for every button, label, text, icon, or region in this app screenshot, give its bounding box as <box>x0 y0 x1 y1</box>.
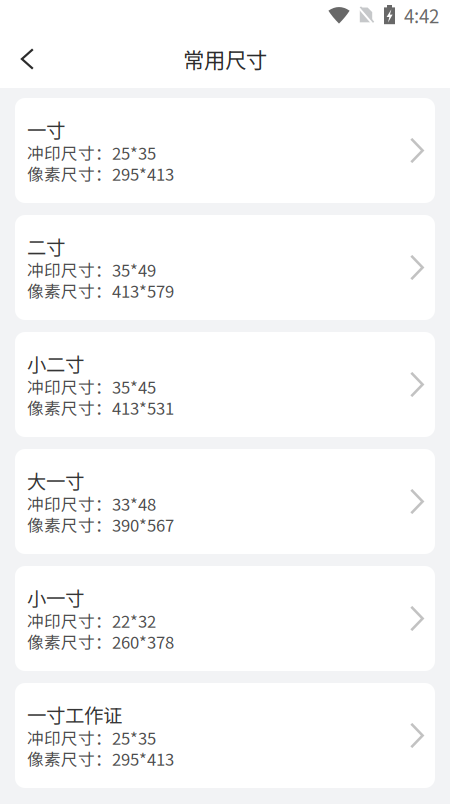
staticText: 4:42 <box>404 1 439 28</box>
button[interactable]: 一寸工作证 <box>15 683 435 788</box>
button[interactable]: 小二寸 <box>15 332 435 437</box>
staticText: 像素尺寸：260*378 <box>27 629 174 654</box>
button[interactable]: 一寸 <box>15 98 435 203</box>
staticText: 冲印尺寸：22*32 <box>27 608 156 632</box>
staticText: 像素尺寸：413*531 <box>27 395 174 420</box>
button[interactable]: Back <box>0 32 54 86</box>
button[interactable]: 大一寸 <box>15 449 435 554</box>
staticText: 小一寸 <box>27 583 84 611</box>
staticText: 冲印尺寸：33*48 <box>27 491 156 515</box>
button[interactable]: 小一寸 <box>15 566 435 671</box>
staticText: 冲印尺寸：35*49 <box>27 257 156 281</box>
staticText: 冲印尺寸：25*35 <box>27 725 156 749</box>
staticText: 小二寸 <box>27 349 84 377</box>
staticText: 像素尺寸：390*567 <box>27 512 174 537</box>
staticText: 像素尺寸：295*413 <box>27 161 174 186</box>
staticText: 二寸 <box>27 232 65 260</box>
button[interactable]: 二寸 <box>15 215 435 320</box>
staticText: 冲印尺寸：35*45 <box>27 374 156 398</box>
staticText: 冲印尺寸：25*35 <box>27 140 156 164</box>
staticText: 大一寸 <box>27 466 84 494</box>
staticText: 一寸 <box>27 115 65 143</box>
staticText: 常用尺寸 <box>183 44 267 74</box>
staticText: 像素尺寸：413*579 <box>27 278 174 303</box>
staticText: 一寸工作证 <box>27 700 122 728</box>
staticText: 像素尺寸：295*413 <box>27 746 174 771</box>
